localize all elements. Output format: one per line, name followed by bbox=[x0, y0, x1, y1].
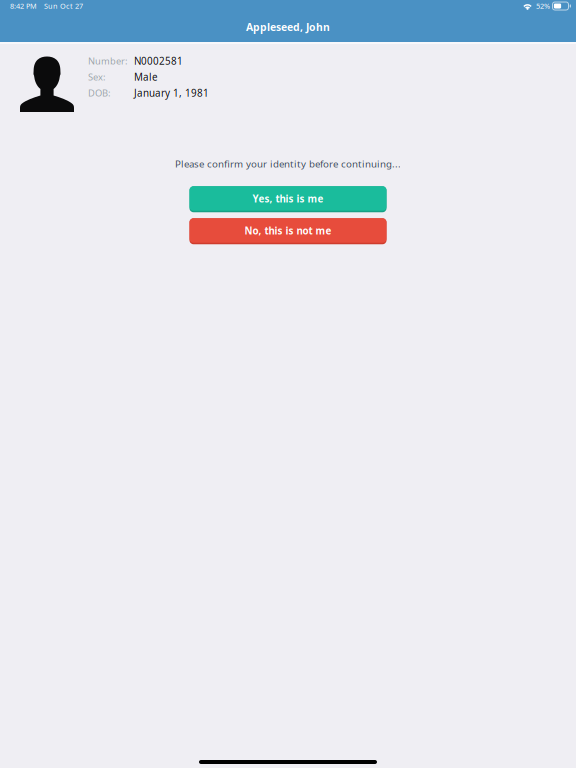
staticText: Sun Oct 27 bbox=[44, 1, 83, 11]
button[interactable]: No, this is not me bbox=[189, 218, 386, 244]
staticText: 52% bbox=[536, 1, 550, 11]
staticText: Male bbox=[134, 70, 158, 84]
staticText: N0002581 bbox=[134, 54, 183, 68]
staticText: Number: bbox=[88, 55, 128, 67]
staticText: No, this is not me bbox=[244, 224, 331, 237]
staticText: Please confirm your identity before cont… bbox=[175, 157, 401, 170]
staticText: Yes, this is me bbox=[252, 192, 323, 205]
staticText: Appleseed, John bbox=[246, 20, 330, 34]
staticText: Sex: bbox=[88, 71, 106, 83]
staticText: 8:42 PM bbox=[10, 1, 37, 11]
button[interactable]: Yes, this is me bbox=[189, 186, 386, 212]
staticText: January 1, 1981 bbox=[134, 86, 209, 100]
staticText: DOB: bbox=[88, 87, 111, 99]
